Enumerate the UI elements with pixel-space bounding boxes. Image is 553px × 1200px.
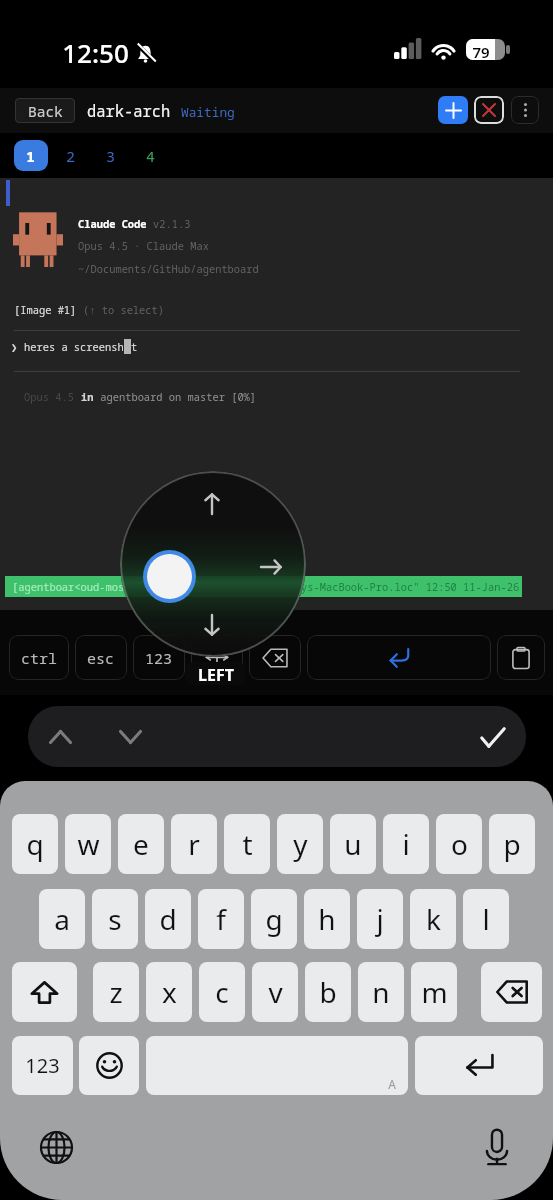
- staticText: v2.1.3: [153, 217, 191, 231]
- button[interactable]: Enter: [307, 635, 491, 680]
- button[interactable]: g: [251, 889, 297, 949]
- staticText: 123: [25, 1052, 60, 1079]
- staticText: u: [344, 825, 362, 863]
- button[interactable]: d: [145, 889, 191, 949]
- button[interactable]: o: [436, 814, 482, 874]
- staticText: g: [265, 900, 283, 938]
- button[interactable]: m: [411, 962, 457, 1022]
- button[interactable]: More options: [511, 96, 539, 124]
- staticText: e: [133, 825, 149, 863]
- button[interactable]: z: [93, 962, 139, 1022]
- staticText: w: [77, 825, 100, 863]
- staticText: esc: [87, 648, 115, 668]
- button[interactable]: 123: [12, 1036, 73, 1095]
- button[interactable]: esc: [75, 635, 127, 680]
- staticText: j: [376, 900, 384, 938]
- button[interactable]: r: [171, 814, 217, 874]
- button[interactable]: New session: [438, 96, 468, 124]
- staticText: ❯: [11, 341, 18, 353]
- staticText: Opus 4.5: [24, 390, 74, 404]
- staticText: m: [421, 973, 448, 1011]
- button[interactable]: b: [305, 962, 351, 1022]
- button[interactable]: Back: [15, 98, 75, 123]
- button[interactable]: Directional joystick: [120, 471, 306, 657]
- staticText: Claude Code: [78, 217, 147, 231]
- button[interactable]: t: [224, 814, 270, 874]
- button[interactable]: Previous field: [38, 715, 82, 759]
- staticText: f: [216, 900, 226, 938]
- button[interactable]: l: [463, 889, 509, 949]
- button[interactable]: 2: [54, 140, 88, 171]
- staticText: agentboard on master [0%]: [94, 390, 257, 404]
- staticText: r: [188, 825, 200, 863]
- staticText: q: [26, 825, 44, 863]
- staticText: A: [388, 1076, 396, 1092]
- button[interactable]: y: [277, 814, 323, 874]
- button[interactable]: Emoji: [79, 1036, 139, 1095]
- button[interactable]: 4: [134, 140, 168, 171]
- staticText: c: [215, 973, 229, 1011]
- staticText: a: [54, 900, 70, 938]
- staticText: 12:50: [62, 35, 129, 70]
- staticText: t: [131, 340, 138, 354]
- button[interactable]: Done: [471, 715, 515, 759]
- staticText: [Image #1]: [14, 303, 77, 317]
- button[interactable]: Dictate: [477, 1127, 517, 1167]
- button[interactable]: q: [12, 814, 58, 874]
- button[interactable]: Close session: [474, 96, 504, 124]
- button[interactable]: Return: [415, 1036, 543, 1095]
- staticText: x: [162, 973, 177, 1011]
- staticText: i: [402, 825, 410, 863]
- staticText: l: [482, 900, 490, 938]
- staticText: heres a screensh: [24, 340, 124, 354]
- button[interactable]: Backspace: [481, 962, 542, 1022]
- staticText: 79: [472, 42, 490, 62]
- staticText: 1: [26, 146, 36, 166]
- staticText: 3: [106, 146, 116, 166]
- button[interactable]: j: [357, 889, 403, 949]
- button[interactable]: p: [489, 814, 535, 874]
- button[interactable]: w: [65, 814, 111, 874]
- staticText: 4: [146, 146, 156, 166]
- button[interactable]: 3: [94, 140, 128, 171]
- staticText: in: [81, 390, 94, 404]
- staticText: ctrl: [21, 648, 58, 668]
- staticText: p: [503, 825, 521, 863]
- button[interactable]: 123: [133, 635, 185, 680]
- button[interactable]: f: [198, 889, 244, 949]
- button[interactable]: u: [330, 814, 376, 874]
- button[interactable]: Switch keyboard: [36, 1127, 76, 1167]
- staticText: z: [109, 973, 123, 1011]
- button[interactable]: Paste: [497, 635, 545, 680]
- button[interactable]: c: [199, 962, 245, 1022]
- button[interactable]: x: [146, 962, 192, 1022]
- button[interactable]: ctrl: [9, 635, 69, 680]
- button[interactable]: Backspace: [249, 635, 301, 680]
- staticText: n: [372, 973, 390, 1011]
- staticText: h: [318, 900, 336, 938]
- staticText: t: [242, 825, 253, 863]
- button[interactable]: 1: [14, 140, 48, 171]
- staticText: 2: [66, 146, 76, 166]
- button[interactable]: space: [146, 1036, 408, 1095]
- staticText: v: [268, 973, 283, 1011]
- button[interactable]: n: [358, 962, 404, 1022]
- button[interactable]: h: [304, 889, 350, 949]
- staticText: ~/Documents/GitHub/agentboard: [78, 262, 259, 276]
- button[interactable]: Arrow keys: [191, 635, 243, 680]
- staticText: (↑ to select): [83, 303, 165, 317]
- button[interactable]: s: [92, 889, 138, 949]
- button[interactable]: v: [252, 962, 298, 1022]
- staticText: Waiting: [181, 103, 235, 120]
- button[interactable]: Next field: [108, 715, 152, 759]
- staticText: Opus 4.5 · Claude Max: [78, 239, 209, 253]
- button[interactable]: Shift: [12, 962, 77, 1022]
- button[interactable]: k: [410, 889, 456, 949]
- button[interactable]: e: [118, 814, 164, 874]
- staticText: 123: [145, 648, 173, 668]
- button[interactable]: i: [383, 814, 429, 874]
- staticText: o: [451, 825, 468, 863]
- staticText: d: [159, 900, 177, 938]
- button[interactable]: a: [39, 889, 85, 949]
